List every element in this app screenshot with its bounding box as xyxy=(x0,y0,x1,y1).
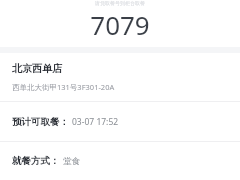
button[interactable]: 就餐方式： xyxy=(0,142,240,180)
button[interactable]: 预计可取餐： xyxy=(0,102,240,141)
staticText: 西单北大街甲131号3F301-20A xyxy=(12,82,115,92)
staticText: 7079 xyxy=(0,7,240,42)
staticText: 就餐方式： xyxy=(12,155,60,167)
staticText: 北京西单店 xyxy=(12,62,62,75)
staticText: 请凭取餐号到柜台取餐 xyxy=(0,0,240,6)
staticText: 03-07 17:52 xyxy=(72,116,119,128)
staticText: 堂食 xyxy=(63,156,80,167)
staticText: 预计可取餐： xyxy=(12,116,69,128)
button[interactable]: 北京西单店 xyxy=(0,53,240,101)
